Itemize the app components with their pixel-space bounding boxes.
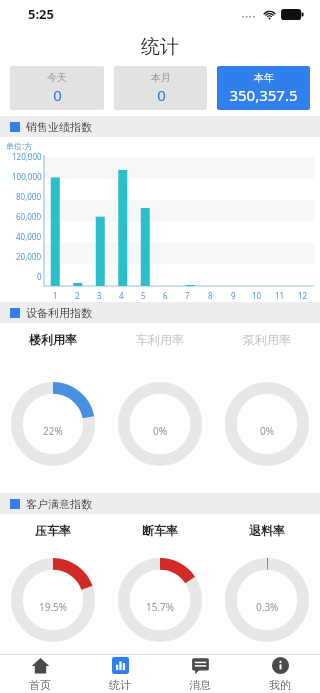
staticText: 3 (97, 290, 102, 301)
staticText: 车利用率 (136, 332, 184, 347)
button[interactable]: 统计 (80, 655, 160, 693)
button[interactable]: 我的 (240, 655, 320, 693)
staticText: 10 (252, 290, 262, 301)
button[interactable]: 本月 (114, 66, 207, 110)
staticText: 0.3% (256, 600, 279, 614)
staticText: 5 (141, 290, 146, 301)
staticText: 客户满意指数 (26, 497, 92, 511)
staticText: 统计 (141, 35, 179, 59)
staticText: 单位:方 (6, 140, 33, 151)
button[interactable]: 压车率 (0, 514, 106, 546)
staticText: 本年 (254, 71, 274, 84)
staticText: 0 (53, 85, 62, 105)
staticText: 9 (231, 290, 236, 301)
staticText: 设备利用指数 (26, 306, 92, 320)
staticText: 7 (185, 290, 190, 301)
staticText: 5:25 (28, 5, 54, 23)
button[interactable]: 退料率 (213, 514, 320, 546)
staticText: 0 (37, 271, 42, 282)
staticText: 100,000 (12, 171, 42, 182)
staticText: 120,000 (12, 151, 42, 162)
staticText: 350,357.5 (229, 85, 298, 105)
button[interactable]: 车利用率 (106, 323, 213, 355)
staticText: 15.7% (146, 600, 175, 614)
button[interactable]: 楼利用率 (0, 323, 106, 355)
button[interactable]: 首页 (0, 655, 80, 693)
staticText: 今天 (47, 71, 67, 84)
staticText: 首页 (29, 678, 51, 692)
staticText: 60,000 (16, 211, 42, 222)
staticText: 0% (153, 424, 168, 438)
staticText: 6 (163, 290, 168, 301)
staticText: 断车率 (142, 523, 178, 538)
staticText: 销售业绩指数 (26, 120, 92, 134)
staticText: 2 (75, 290, 80, 301)
button[interactable]: 泵利用率 (213, 323, 320, 355)
staticText: 4 (119, 290, 124, 301)
staticText: 11 (275, 290, 285, 301)
staticText: 0 (157, 85, 166, 105)
staticText: 0% (260, 424, 275, 438)
staticText: 统计 (109, 678, 131, 692)
staticText: 消息 (189, 678, 211, 692)
button[interactable]: 本年 (217, 66, 310, 110)
staticText: 楼利用率 (29, 332, 77, 347)
staticText: 12 (298, 290, 308, 301)
staticText: 19.5% (39, 600, 68, 614)
staticText: 我的 (269, 678, 291, 692)
staticText: 泵利用率 (243, 332, 291, 347)
staticText: 退料率 (249, 523, 285, 538)
staticText: 20,000 (16, 251, 42, 262)
button[interactable]: 断车率 (106, 514, 213, 546)
staticText: 压车率 (35, 523, 71, 538)
staticText: 80,000 (16, 191, 42, 202)
button[interactable]: 今天 (10, 66, 104, 110)
staticText: 1 (53, 290, 58, 301)
staticText: 40,000 (16, 231, 42, 242)
staticText: 本月 (151, 71, 171, 84)
staticText: 8 (208, 290, 213, 301)
button[interactable]: 消息 (160, 655, 240, 693)
staticText: 22% (43, 424, 63, 438)
